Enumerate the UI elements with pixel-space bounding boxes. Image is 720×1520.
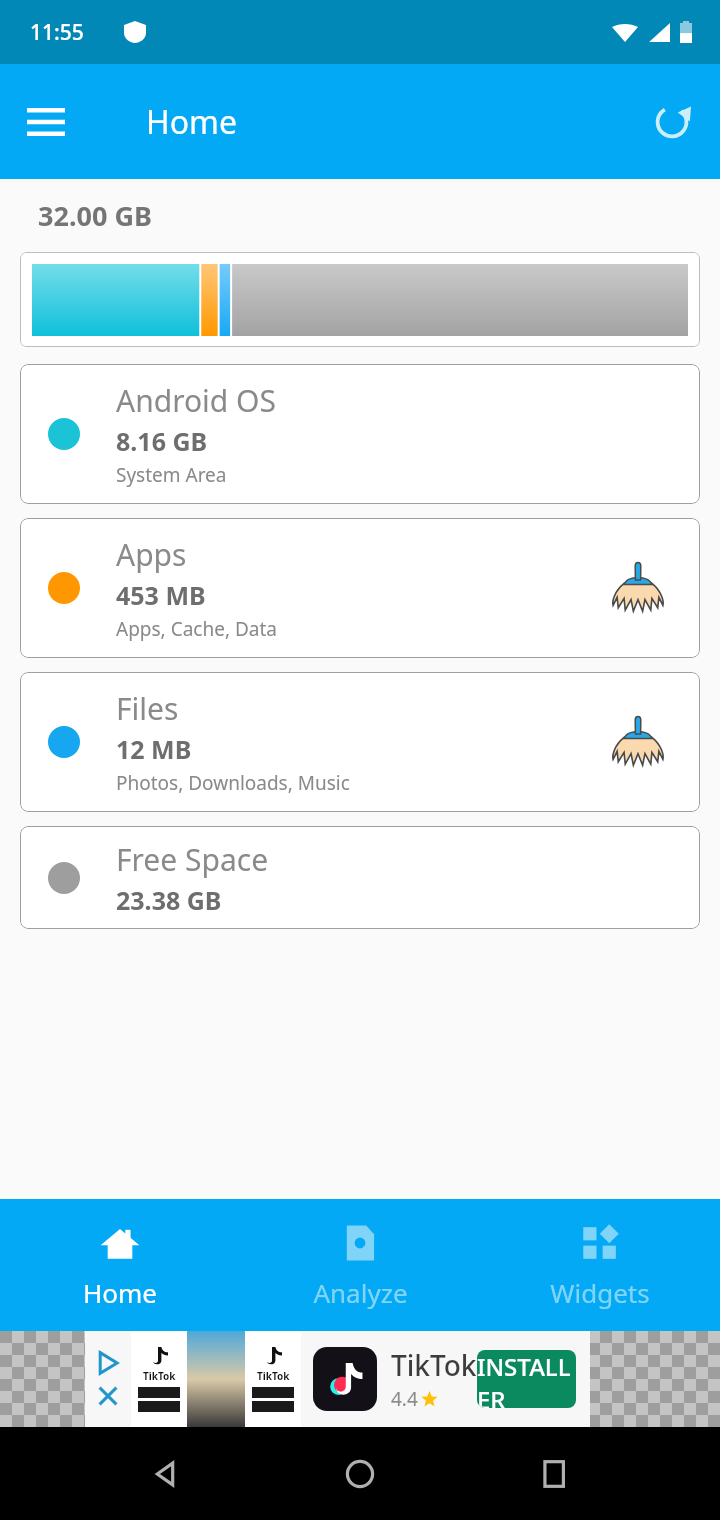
staticText: 4.4 [391,1386,418,1412]
staticText: Home [146,100,238,144]
staticText: 32.00 GB [38,197,152,234]
staticText: System Area [116,462,227,488]
button[interactable]: Clean Files [602,706,674,778]
button[interactable]: Open navigation menu [18,94,74,150]
staticText: TikTok [391,1346,477,1384]
staticText: 8.16 GB [116,424,208,458]
staticText: Free Space [116,839,269,880]
button[interactable]: Free Space [20,826,700,929]
staticText: TikTok [143,1369,176,1383]
staticText: Apps, Cache, Data [116,616,277,642]
staticText: Android OS [116,380,276,421]
staticText: 23.38 GB [116,883,222,917]
button[interactable]: Home [330,1444,390,1504]
button[interactable]: Back [135,1444,195,1504]
button[interactable]: Apps [20,518,700,658]
button[interactable]: Refresh [642,92,702,152]
button[interactable]: Clean Apps [602,552,674,624]
button[interactable]: Widgets [480,1199,720,1331]
staticText: Widgets [550,1275,650,1310]
staticText: 11:55 [30,18,84,47]
staticText: 12 MB [116,732,192,766]
button[interactable]: Recent apps [525,1444,585,1504]
button[interactable]: Android OS [20,364,700,504]
staticText: Photos, Downloads, Music [116,770,350,796]
staticText: Home [83,1275,157,1310]
button[interactable]: TikTok advertisement [85,1331,590,1427]
button[interactable]: Files [20,672,700,812]
staticText: TikTok [257,1369,290,1383]
button[interactable] [20,252,700,347]
staticText: Analyze [313,1275,408,1310]
staticText: Apps [116,534,187,575]
button[interactable]: Analyze [240,1199,480,1331]
button[interactable]: INSTALLER [477,1350,576,1408]
staticText: Files [116,688,179,729]
staticText: 453 MB [116,578,206,612]
staticText: INSTALLER [477,1350,576,1408]
button[interactable]: Home [0,1199,240,1331]
